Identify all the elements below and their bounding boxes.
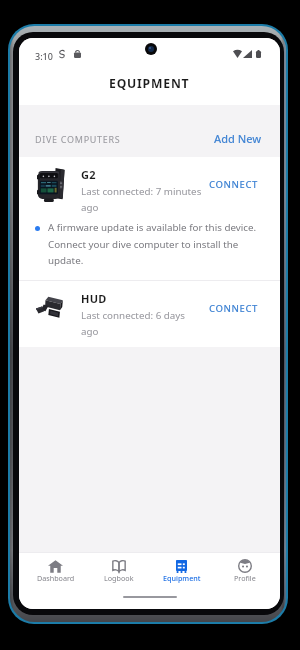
- staticText: DIVE COMPUTERS: [35, 133, 121, 145]
- staticText: Add New: [214, 131, 262, 146]
- staticText: G2: [81, 167, 96, 182]
- button[interactable]: CONNECT: [209, 302, 258, 315]
- staticText: HUD: [81, 291, 107, 306]
- staticText: EQUIPMENT: [109, 75, 190, 92]
- staticText: Last connected: 6 days ago: [81, 309, 202, 338]
- staticText: Equipment: [163, 573, 201, 583]
- staticText: A firmware update is available for this …: [48, 221, 260, 266]
- staticText: Logbook: [104, 573, 134, 583]
- staticText: CONNECT: [209, 178, 258, 191]
- staticText: CONNECT: [209, 302, 258, 315]
- button[interactable]: Add New: [214, 131, 262, 146]
- button[interactable]: Equipment: [150, 553, 213, 589]
- button[interactable]: Dashboard: [24, 553, 87, 589]
- button[interactable]: HUD: [19, 281, 280, 347]
- staticText: Last connected: 7 minutes ago: [81, 185, 202, 214]
- staticText: 3:10: [35, 50, 53, 62]
- staticText: Profile: [234, 573, 256, 583]
- button[interactable]: Logbook: [87, 553, 150, 589]
- button[interactable]: Profile: [213, 553, 276, 589]
- button[interactable]: G2: [19, 157, 280, 214]
- staticText: Dashboard: [37, 573, 75, 583]
- button[interactable]: CONNECT: [209, 178, 258, 191]
